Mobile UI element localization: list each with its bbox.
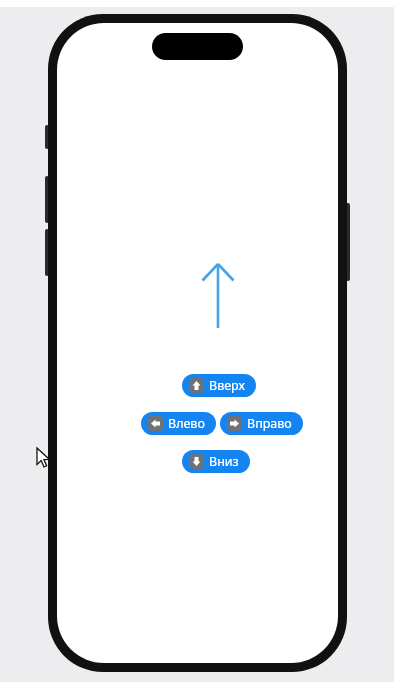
staticText: Вверх <box>209 377 245 394</box>
staticText: Вниз <box>209 453 239 470</box>
staticText: Вправо <box>247 415 292 432</box>
button[interactable]: Вниз <box>182 450 250 473</box>
staticText: Влево <box>168 415 205 432</box>
button[interactable]: Вправо <box>220 412 303 435</box>
button[interactable]: Вверх <box>182 374 256 397</box>
button[interactable]: Влево <box>141 412 216 435</box>
